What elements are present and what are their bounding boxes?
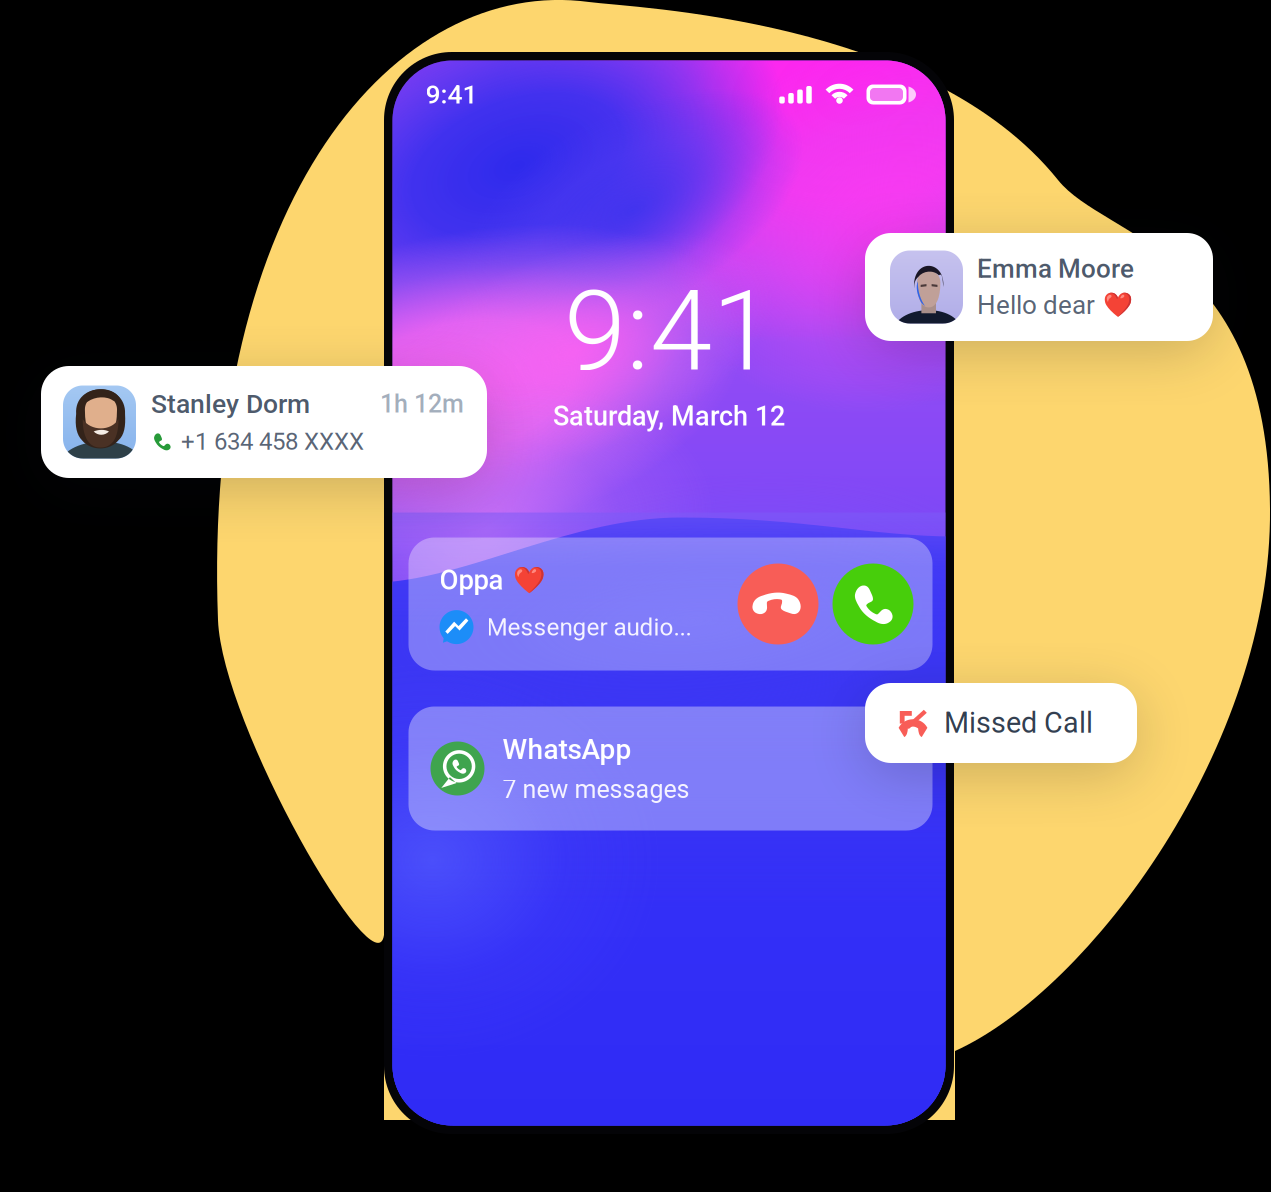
staticText: 1h 12m <box>380 389 464 419</box>
staticText: WhatsApp <box>502 733 631 766</box>
staticText: +1 634 458 XXXX <box>181 427 364 456</box>
staticText: Oppa <box>439 564 503 596</box>
staticText: Saturday, March 12 <box>553 400 785 432</box>
button[interactable]: Missed Call <box>865 683 1137 763</box>
staticText: 9:41 <box>425 79 477 110</box>
staticText: 9:41 <box>564 265 774 397</box>
staticText: Messenger audio... <box>486 613 691 641</box>
button[interactable]: Stanley Dorm <box>41 366 487 478</box>
staticText: Stanley Dorm <box>151 388 310 419</box>
staticText: ❤️ <box>1103 291 1133 319</box>
button[interactable]: Accept call <box>832 563 913 644</box>
button[interactable]: Emma Moore <box>865 233 1213 341</box>
staticText: Emma Moore <box>977 253 1134 284</box>
button[interactable]: WhatsApp <box>408 706 932 830</box>
staticText: ❤️ <box>512 565 544 595</box>
staticText: 7 new messages <box>502 775 689 804</box>
staticText: Missed Call <box>944 706 1093 740</box>
button[interactable]: Decline call <box>737 563 818 644</box>
staticText: Hello dear <box>977 290 1095 320</box>
